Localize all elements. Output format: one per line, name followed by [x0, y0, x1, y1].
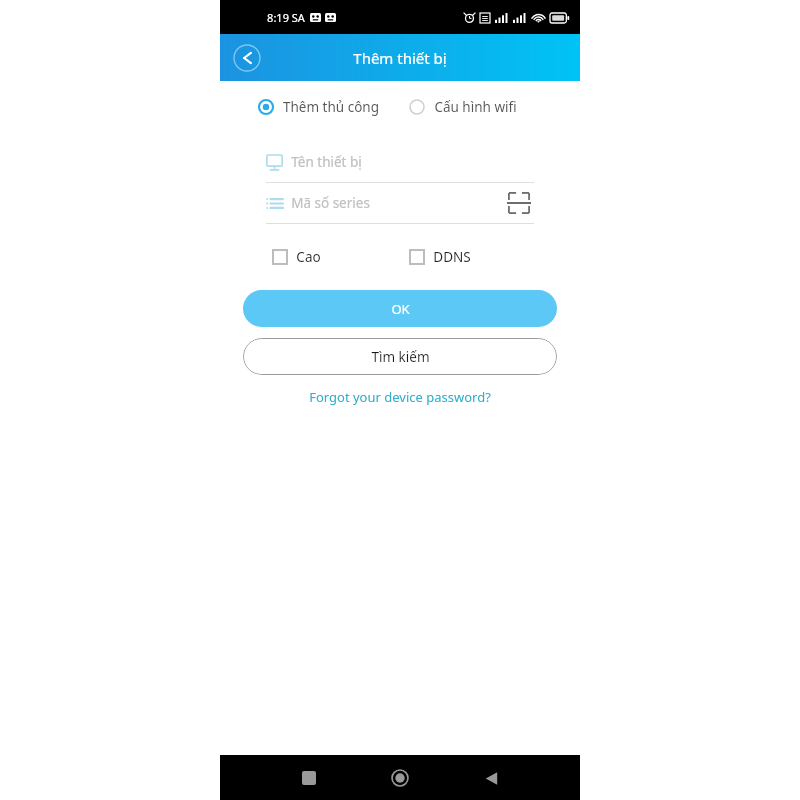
staticText: Thêm thủ công [283, 98, 379, 116]
button[interactable]: Tên thiết bị [266, 142, 534, 182]
button[interactable]: Forgot your device password? [220, 388, 580, 406]
button[interactable]: Recent apps [290, 759, 328, 797]
button[interactable]: OK [243, 290, 557, 327]
staticText: OK [391, 300, 410, 318]
staticText: Forgot your device password? [309, 388, 491, 406]
button[interactable]: Mã số series [266, 183, 534, 223]
button[interactable]: Back [472, 759, 510, 797]
staticText: Cấu hình wifi [434, 98, 517, 116]
button[interactable]: DDNS [409, 244, 546, 270]
button[interactable]: Thêm thủ công [258, 94, 409, 120]
button[interactable]: Scan QR code [504, 188, 534, 218]
button[interactable]: Cao [272, 244, 409, 270]
staticText: 8:19 SA [267, 10, 305, 25]
button[interactable]: Home [381, 759, 419, 797]
staticText: Thêm thiết bị [353, 48, 447, 68]
staticText: Tìm kiếm [371, 348, 430, 366]
staticText: Tên thiết bị [291, 153, 362, 171]
staticText: Cao [296, 248, 321, 266]
button[interactable]: Back [227, 38, 267, 78]
button[interactable]: Cấu hình wifi [409, 94, 560, 120]
button[interactable]: Tìm kiếm [243, 338, 557, 375]
staticText: Mã số series [291, 194, 370, 212]
staticText: DDNS [433, 248, 471, 266]
